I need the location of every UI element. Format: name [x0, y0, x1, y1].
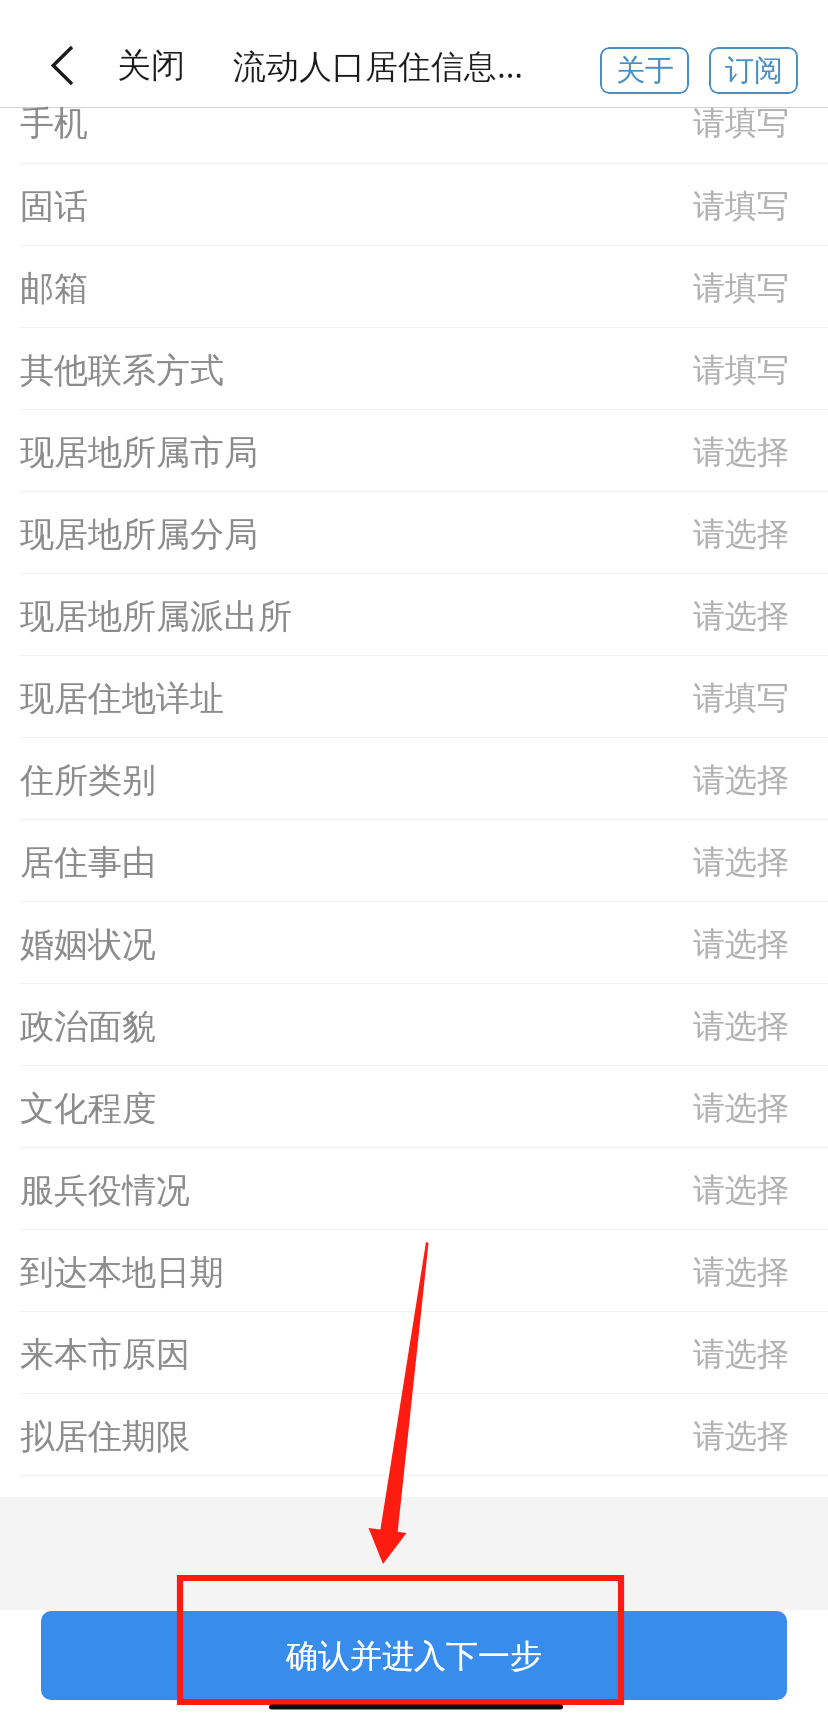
button[interactable]: 住所类别 [0, 738, 828, 820]
staticText: 请选择 [693, 514, 789, 554]
staticText: 请选择 [693, 842, 789, 882]
staticText: 其他联系方式 [20, 349, 224, 392]
button[interactable]: 固话 [0, 164, 828, 246]
button[interactable]: 到达本地日期 [0, 1230, 828, 1312]
staticText: 拟居住期限 [20, 1415, 190, 1458]
button[interactable]: 关闭 [109, 38, 193, 93]
button[interactable]: 来本市原因 [0, 1312, 828, 1394]
button[interactable]: 现居住地详址 [0, 656, 828, 738]
button[interactable]: 政治面貌 [0, 984, 828, 1066]
staticText: 住所类别 [20, 759, 156, 802]
staticText: 来本市原因 [20, 1333, 190, 1376]
staticText: 现居地所属派出所 [20, 595, 292, 638]
staticText: 请选择 [693, 924, 789, 964]
staticText: 请填写 [693, 103, 789, 143]
staticText: 文化程度 [20, 1087, 156, 1130]
staticText: 请填写 [693, 678, 789, 718]
button[interactable]: 确认并进入下一步 [41, 1611, 787, 1700]
staticText: 订阅 [725, 52, 783, 89]
staticText: 流动人口居住信息… [233, 43, 524, 88]
button[interactable]: 现居地所属市局 [0, 410, 828, 492]
button[interactable]: 现居地所属分局 [0, 492, 828, 574]
button[interactable]: 其他联系方式 [0, 328, 828, 410]
button[interactable]: 居住事由 [0, 820, 828, 902]
staticText: 请选择 [693, 1416, 789, 1456]
staticText: 请选择 [693, 1006, 789, 1046]
staticText: 请选择 [693, 1252, 789, 1292]
button[interactable]: 文化程度 [0, 1066, 828, 1148]
staticText: 现居住地详址 [20, 677, 224, 720]
staticText: 固话 [20, 185, 88, 228]
staticText: 关于 [616, 52, 674, 89]
button[interactable]: 婚姻状况 [0, 902, 828, 984]
staticText: 请选择 [693, 432, 789, 472]
staticText: 请填写 [693, 186, 789, 226]
staticText: 请填写 [693, 268, 789, 308]
staticText: 请选择 [693, 1088, 789, 1128]
button[interactable]: 订阅 [709, 47, 798, 94]
staticText: 服兵役情况 [20, 1169, 190, 1212]
button[interactable]: 关于 [600, 47, 689, 94]
button[interactable]: 手机 [0, 108, 828, 164]
button[interactable]: 现居地所属派出所 [0, 574, 828, 656]
staticText: 请选择 [693, 596, 789, 636]
staticText: 婚姻状况 [20, 923, 156, 966]
staticText: 确认并进入下一步 [286, 1636, 542, 1676]
staticText: 邮箱 [20, 267, 88, 310]
button[interactable]: 邮箱 [0, 246, 828, 328]
button[interactable]: 拟居住期限 [0, 1394, 828, 1476]
button[interactable]: Back [40, 43, 84, 87]
staticText: 请选择 [693, 760, 789, 800]
staticText: 请选择 [693, 1170, 789, 1210]
staticText: 请填写 [693, 350, 789, 390]
staticText: 现居地所属市局 [20, 431, 258, 474]
staticText: 手机 [20, 102, 88, 145]
staticText: 到达本地日期 [20, 1251, 224, 1294]
staticText: 居住事由 [20, 841, 156, 884]
staticText: 关闭 [117, 44, 185, 87]
staticText: 请选择 [693, 1334, 789, 1374]
staticText: 政治面貌 [20, 1005, 156, 1048]
staticText: 现居地所属分局 [20, 513, 258, 556]
button[interactable]: 服兵役情况 [0, 1148, 828, 1230]
